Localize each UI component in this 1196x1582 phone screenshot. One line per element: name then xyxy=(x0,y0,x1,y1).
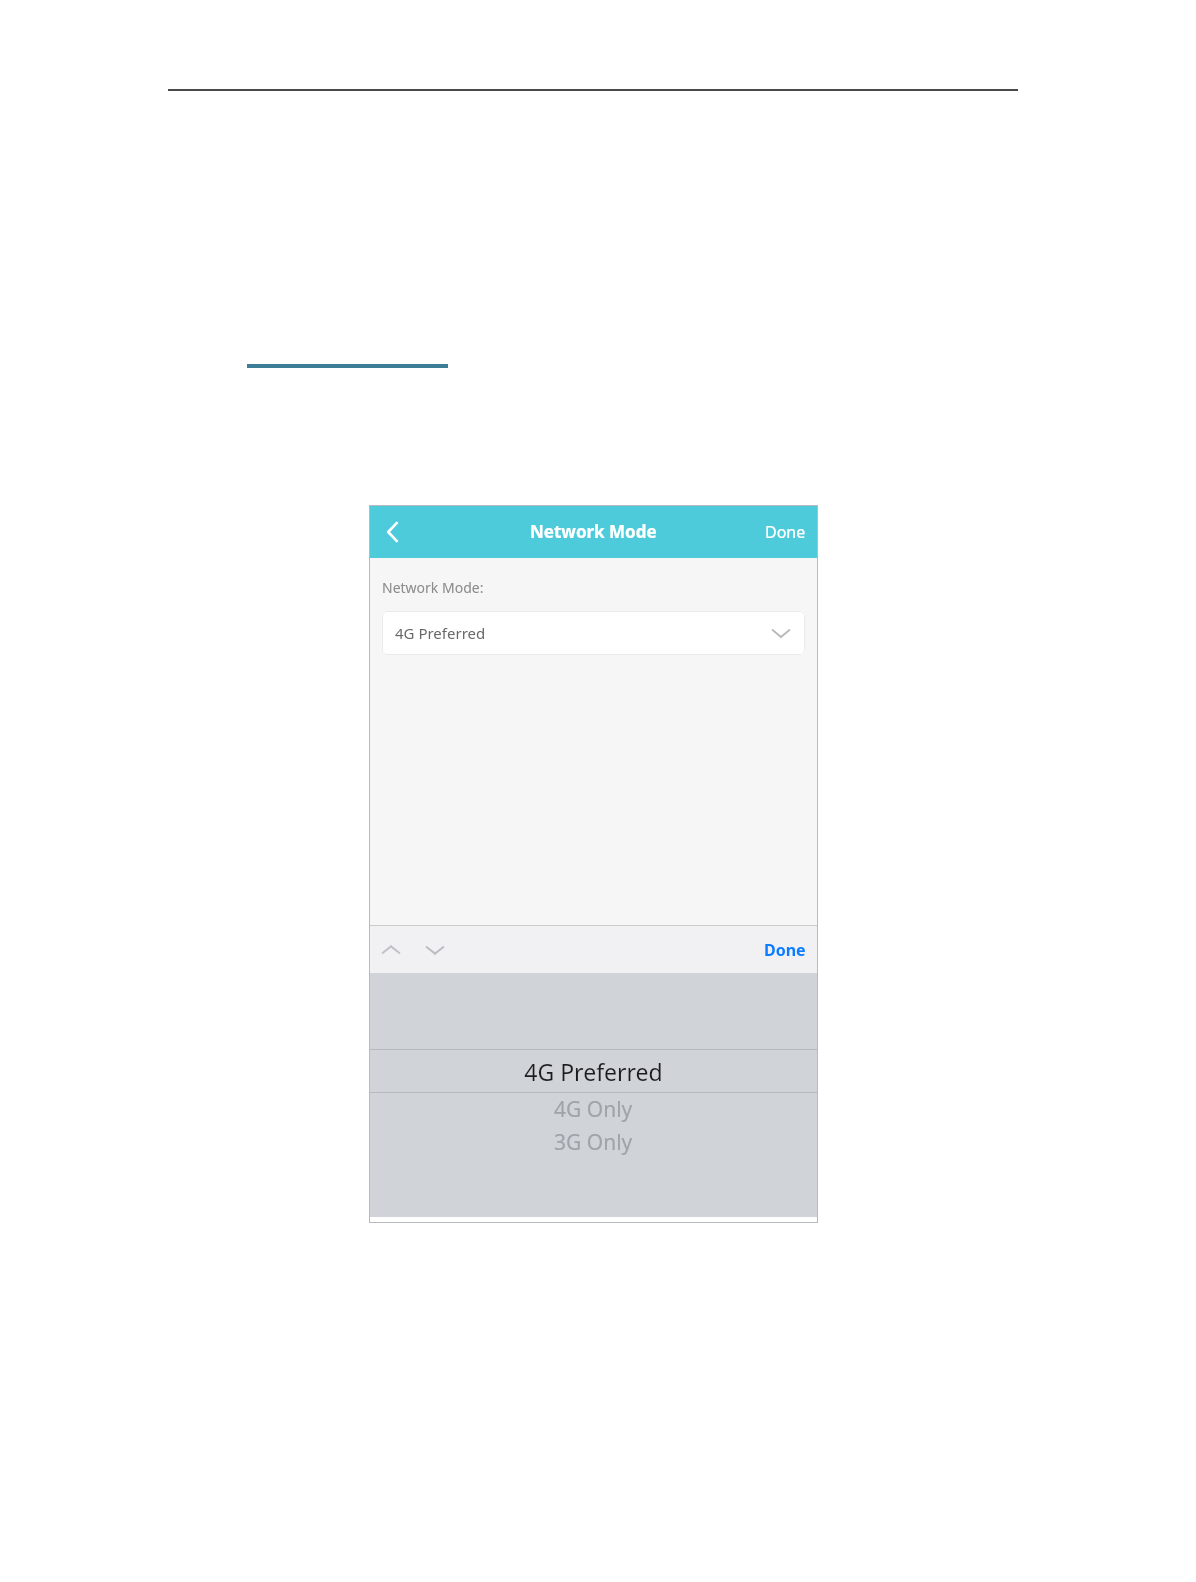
button[interactable]: 4G Preferred xyxy=(382,611,805,655)
button[interactable]: 4G Only xyxy=(369,1093,818,1126)
button[interactable]: Next field xyxy=(413,928,457,972)
button[interactable]: 3G Only xyxy=(369,1126,818,1159)
staticText: 4G Preferred xyxy=(524,1056,663,1087)
button[interactable]: 4G Preferred xyxy=(369,1050,818,1092)
staticText: 3G Only xyxy=(554,1128,633,1157)
staticText: Network Mode xyxy=(530,520,657,543)
button[interactable]: Done xyxy=(752,929,818,971)
staticText: 4G Only xyxy=(554,1095,633,1124)
staticText: 4G Preferred xyxy=(395,623,486,643)
button[interactable]: Previous field xyxy=(369,928,413,972)
staticText: Done xyxy=(764,939,806,961)
staticText: Done xyxy=(765,521,806,543)
staticText: Network Mode: xyxy=(382,578,484,597)
button[interactable]: Back xyxy=(369,508,417,556)
button[interactable]: Done xyxy=(753,511,818,553)
